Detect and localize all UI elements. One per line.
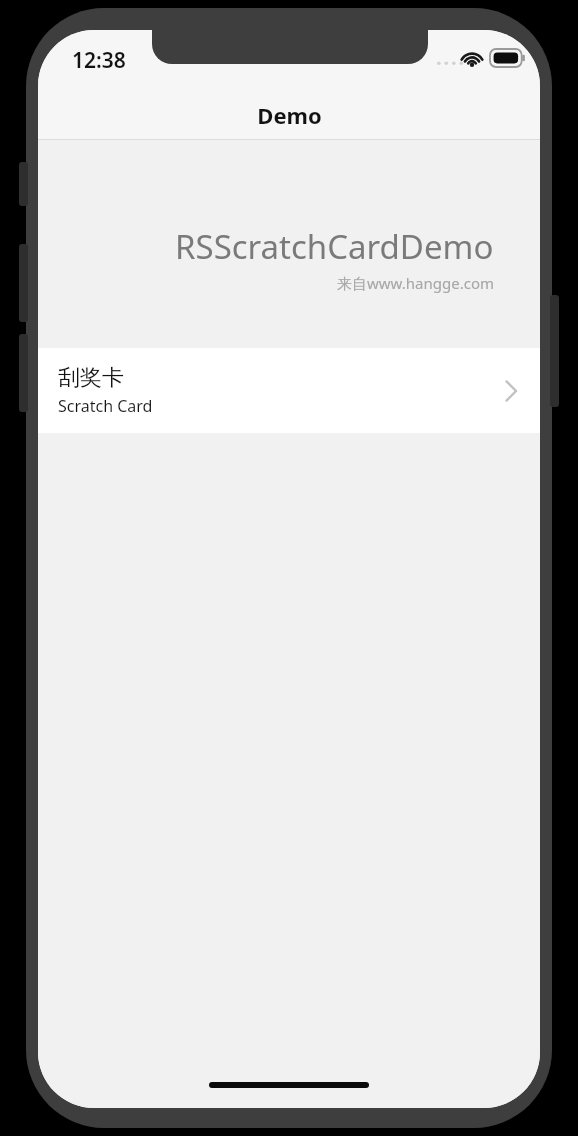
staticText: 刮奖卡: [58, 364, 124, 392]
staticText: Scratch Card: [58, 395, 153, 417]
staticText: 12:38: [72, 46, 126, 75]
button[interactable]: 刮奖卡: [38, 348, 540, 433]
staticText: 来自www.hangge.com: [337, 273, 494, 293]
staticText: Demo: [257, 100, 322, 130]
staticText: RSScratchCardDemo: [175, 224, 494, 269]
